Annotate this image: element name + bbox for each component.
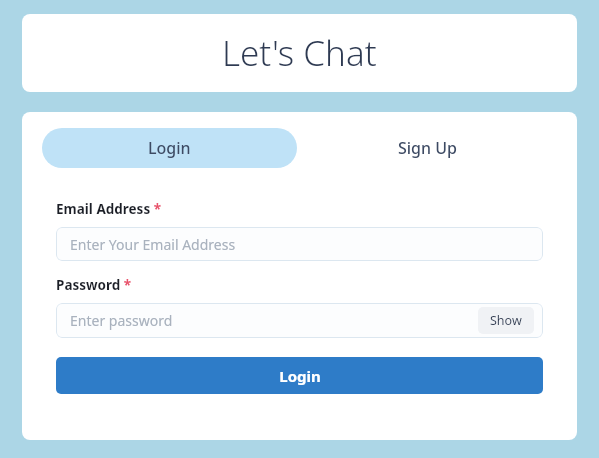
button[interactable]: Login [56, 357, 543, 394]
staticText: Sign Up [398, 137, 457, 159]
button[interactable]: Sign Up [297, 128, 557, 168]
staticText: Enter password [70, 311, 173, 330]
staticText: Enter Your Email Address [70, 235, 236, 254]
button[interactable]: Login [42, 128, 297, 168]
staticText: Let's Chat [222, 29, 377, 77]
staticText: Login [279, 366, 321, 386]
staticText: Password * [56, 276, 132, 294]
button[interactable]: Show [478, 307, 534, 334]
button[interactable]: Enter Your Email Address [56, 227, 543, 261]
staticText: Email Address * [56, 200, 161, 218]
staticText: Show [490, 312, 522, 329]
staticText: Login [148, 137, 191, 159]
